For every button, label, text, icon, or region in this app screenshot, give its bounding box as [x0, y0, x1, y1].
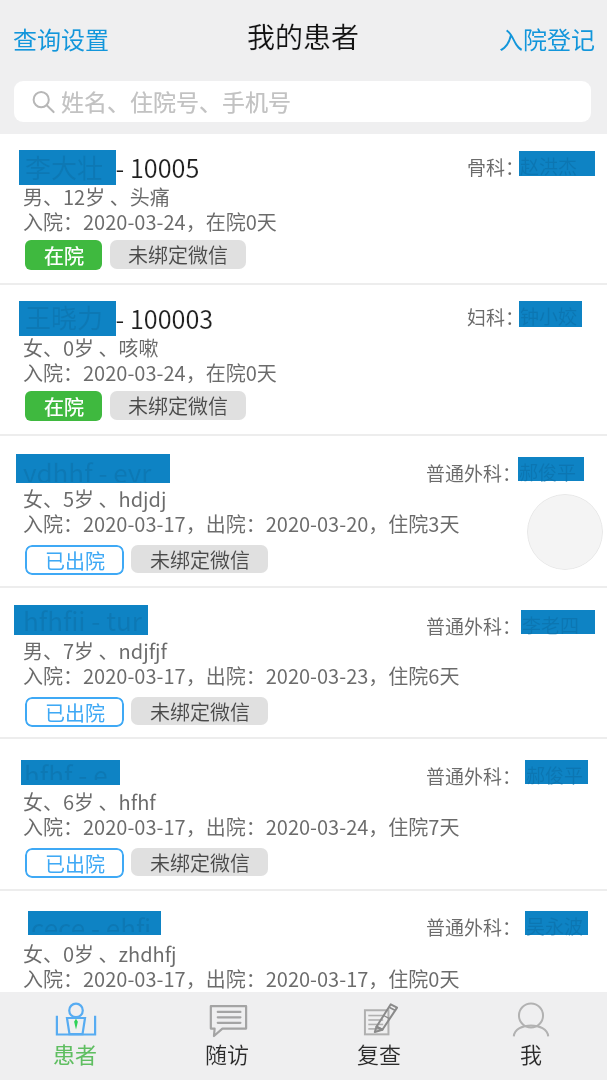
staticText: 复查: [357, 1037, 402, 1069]
button[interactable]: Follow-up: [151, 992, 303, 1080]
button[interactable]: 未绑定微信: [110, 391, 246, 420]
button[interactable]: 已出院: [25, 1000, 124, 1030]
staticText: 李大壮: [25, 150, 104, 183]
button[interactable]: 未绑定微信: [131, 1000, 268, 1028]
staticText: 吴永波: [526, 912, 584, 940]
staticText: 入院：2020-03-24，在院0天: [23, 358, 277, 387]
staticText: 王晓力: [25, 301, 104, 333]
button[interactable]: ydhhf - eyr: [0, 436, 607, 586]
button[interactable]: 入院登记: [486, 11, 607, 66]
staticText: 已出院: [45, 698, 105, 727]
staticText: 未绑定微信: [128, 240, 228, 269]
staticText: 入院登记: [499, 21, 595, 56]
staticText: 入院：2020-03-24，在院0天: [23, 207, 277, 236]
staticText: 妇科：: [467, 303, 525, 331]
staticText: 入院：2020-03-17，出院：2020-03-17，住院0天: [23, 964, 460, 993]
staticText: 已出院: [45, 849, 105, 878]
button[interactable]: 姓名、住院号、手机号: [14, 81, 591, 122]
button[interactable]: 李大壮: [0, 134, 607, 283]
staticText: 已出院: [45, 1001, 105, 1030]
button[interactable]: 已出院: [25, 697, 124, 727]
staticText: 女、0岁 、咳嗽: [23, 333, 159, 362]
staticText: 未绑定微信: [128, 391, 228, 420]
staticText: 女、6岁 、hfhf: [23, 787, 156, 816]
button[interactable]: 未绑定微信: [131, 848, 268, 876]
staticText: 入院：2020-03-17，出院：2020-03-20，住院3天: [23, 509, 460, 538]
staticText: 普通外科：: [426, 459, 522, 487]
button[interactable]: Back to top: [527, 494, 603, 570]
staticText: - 100003: [110, 300, 214, 336]
staticText: 李老四: [522, 611, 580, 639]
staticText: 查询设置: [13, 21, 109, 56]
staticText: 入院：2020-03-17，出院：2020-03-23，住院6天: [23, 661, 460, 690]
staticText: ydhhf - eyr: [23, 454, 152, 482]
staticText: 普通外科：: [426, 913, 522, 941]
staticText: 已出院: [45, 546, 105, 575]
button[interactable]: 未绑定微信: [110, 240, 246, 269]
staticText: 女、0岁 、zhdhfj: [23, 939, 177, 968]
staticText: 未绑定微信: [150, 848, 250, 876]
staticText: 未绑定微信: [150, 697, 250, 725]
staticText: 在院: [44, 241, 84, 270]
staticText: 姓名、住院号、手机号: [61, 84, 291, 117]
button[interactable]: 已出院: [25, 848, 124, 878]
staticText: 普通外科：: [426, 762, 522, 790]
staticText: 郝俊平: [526, 761, 584, 789]
button[interactable]: 王晓力: [0, 285, 607, 434]
button[interactable]: 在院: [25, 240, 102, 270]
staticText: 钟小姣: [520, 302, 578, 330]
button[interactable]: 已出院: [25, 545, 124, 575]
staticText: - 10005: [110, 149, 200, 185]
button[interactable]: 在院: [25, 391, 102, 421]
button[interactable]: 查询设置: [0, 11, 122, 66]
button[interactable]: Re-examination: [303, 992, 455, 1080]
staticText: 未绑定微信: [150, 545, 250, 573]
staticText: hfhfjj - tur: [23, 605, 142, 631]
staticText: 我: [520, 1037, 543, 1069]
button[interactable]: hfhf - e: [0, 739, 607, 889]
staticText: cece - ehfj: [31, 911, 152, 932]
button[interactable]: hfhfjj - tur: [0, 588, 607, 737]
staticText: 郝俊平: [519, 458, 577, 486]
staticText: 女、5岁 、hdjdj: [23, 484, 167, 513]
staticText: 在院: [44, 392, 84, 421]
button[interactable]: Me: [455, 992, 607, 1080]
staticText: 患者: [53, 1037, 98, 1069]
staticText: 男、12岁 、头痛: [23, 182, 170, 211]
button[interactable]: Patients: [0, 992, 151, 1080]
staticText: 我的患者: [247, 16, 360, 57]
staticText: 普通外科：: [426, 612, 522, 640]
staticText: hfhf - e: [24, 760, 108, 780]
staticText: 未绑定微信: [150, 1000, 250, 1028]
staticText: 男、7岁 、ndjfjf: [23, 636, 167, 665]
button[interactable]: cece - ehfj: [0, 891, 607, 992]
button[interactable]: 未绑定微信: [131, 545, 268, 573]
staticText: 骨科：: [467, 153, 525, 181]
button[interactable]: 未绑定微信: [131, 697, 268, 725]
staticText: 入院：2020-03-17，出院：2020-03-24，住院7天: [23, 812, 460, 841]
staticText: 赵洪杰: [520, 152, 578, 180]
staticText: 随访: [205, 1037, 250, 1069]
